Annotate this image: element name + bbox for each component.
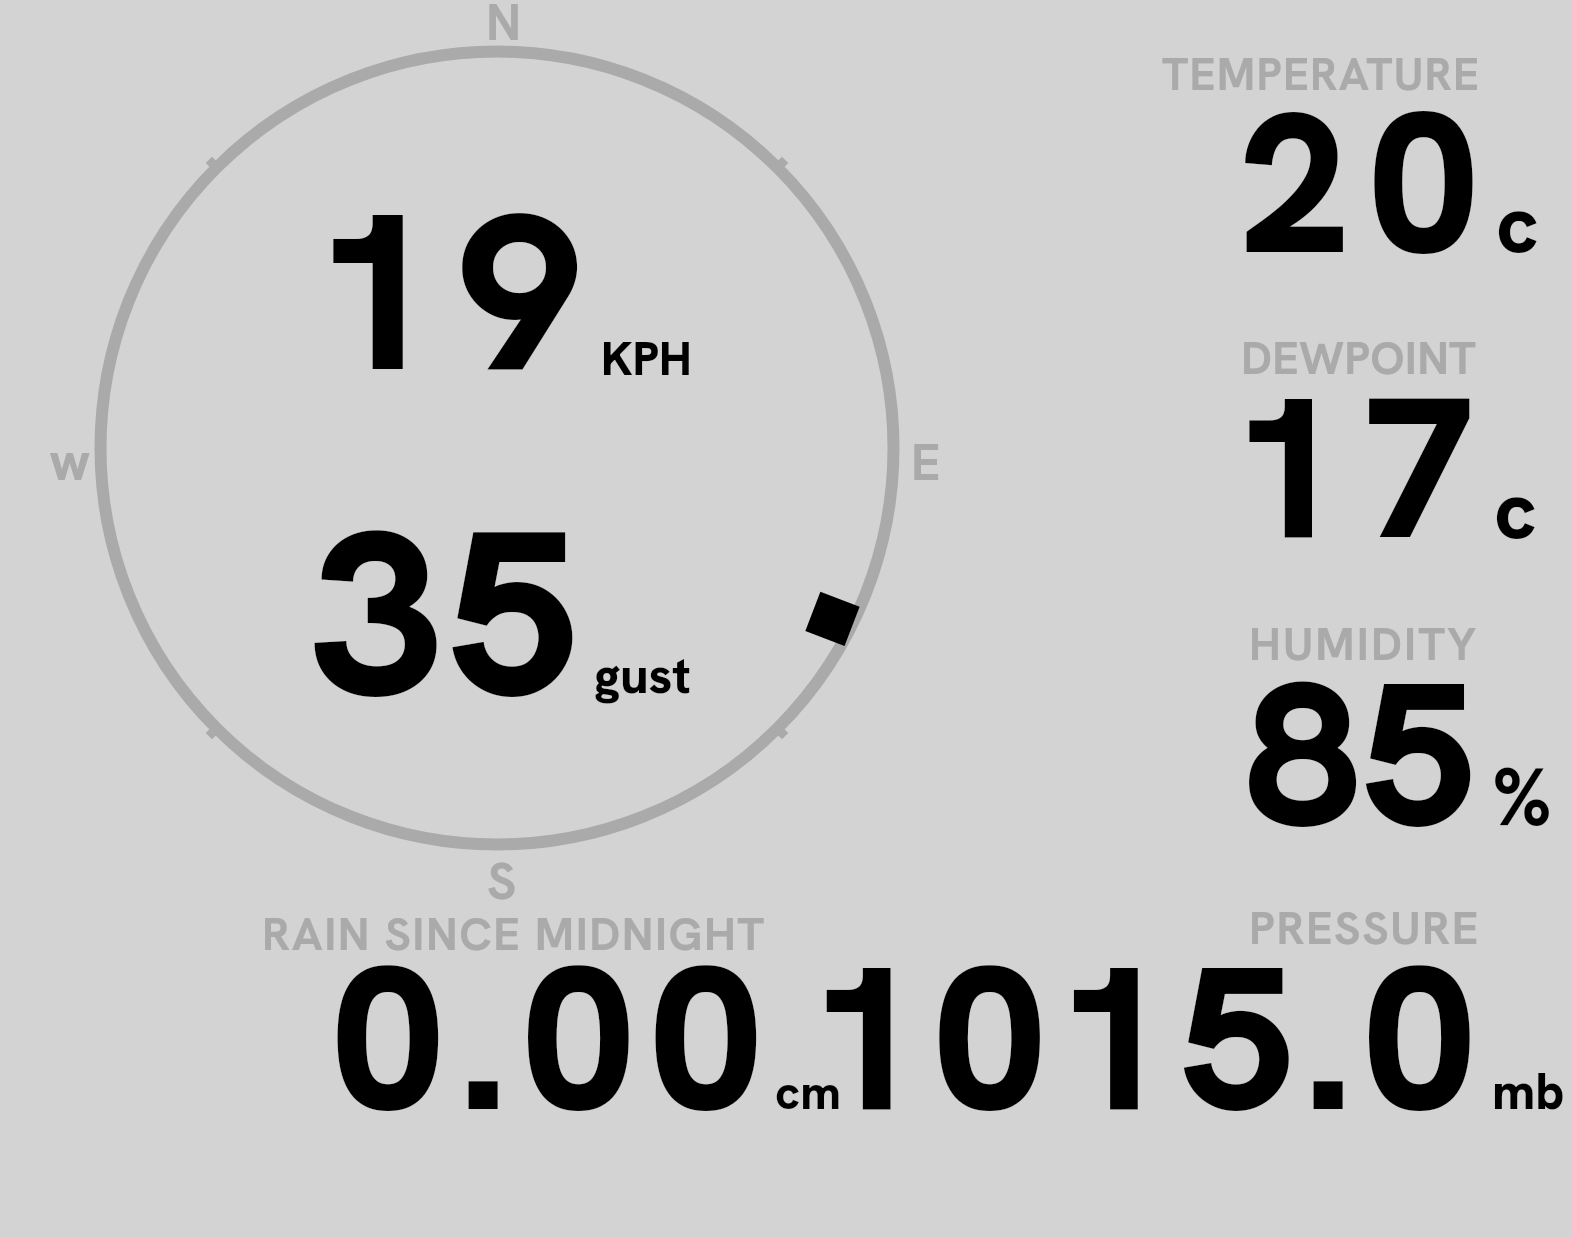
staticText: 35 xyxy=(312,463,584,765)
staticText: HUMIDITY xyxy=(1249,614,1479,674)
button[interactable]: Wind 19 KPH, gusting 35, direction east-… xyxy=(97,50,897,846)
staticText: gust xyxy=(594,643,692,708)
staticText: 85 xyxy=(1246,623,1479,886)
button[interactable]: Pressure 1015.0 mb xyxy=(860,900,1571,1120)
button[interactable]: Dew point 17 degrees Celsius xyxy=(1150,330,1571,545)
staticText: 1015.0 xyxy=(809,906,1487,1171)
staticText: N xyxy=(486,0,522,55)
staticText: 0.00 xyxy=(331,906,777,1171)
staticText: PRESSURE xyxy=(1249,898,1480,958)
staticText: S xyxy=(487,848,517,914)
staticText: c xyxy=(1494,456,1537,563)
staticText: mb xyxy=(1492,1058,1565,1124)
staticText: RAIN SINCE MIDNIGHT xyxy=(262,904,766,964)
staticText: % xyxy=(1492,743,1552,850)
staticText: 20 xyxy=(1239,54,1497,312)
staticText: 17 xyxy=(1232,338,1495,597)
staticText: E xyxy=(911,429,941,495)
button[interactable]: Temperature 20 degrees Celsius xyxy=(1150,45,1571,260)
staticText: cm xyxy=(775,1061,841,1124)
staticText: w xyxy=(49,425,91,497)
button[interactable]: Rain since midnight 0.00 cm xyxy=(250,905,860,1120)
staticText: 19 xyxy=(314,148,602,436)
staticText: TEMPERATURE xyxy=(1162,45,1481,104)
staticText: KPH xyxy=(601,328,692,389)
staticText: DEWPOINT xyxy=(1241,328,1477,388)
button[interactable]: Humidity 85 percent xyxy=(1150,615,1571,830)
staticText: c xyxy=(1496,170,1539,277)
